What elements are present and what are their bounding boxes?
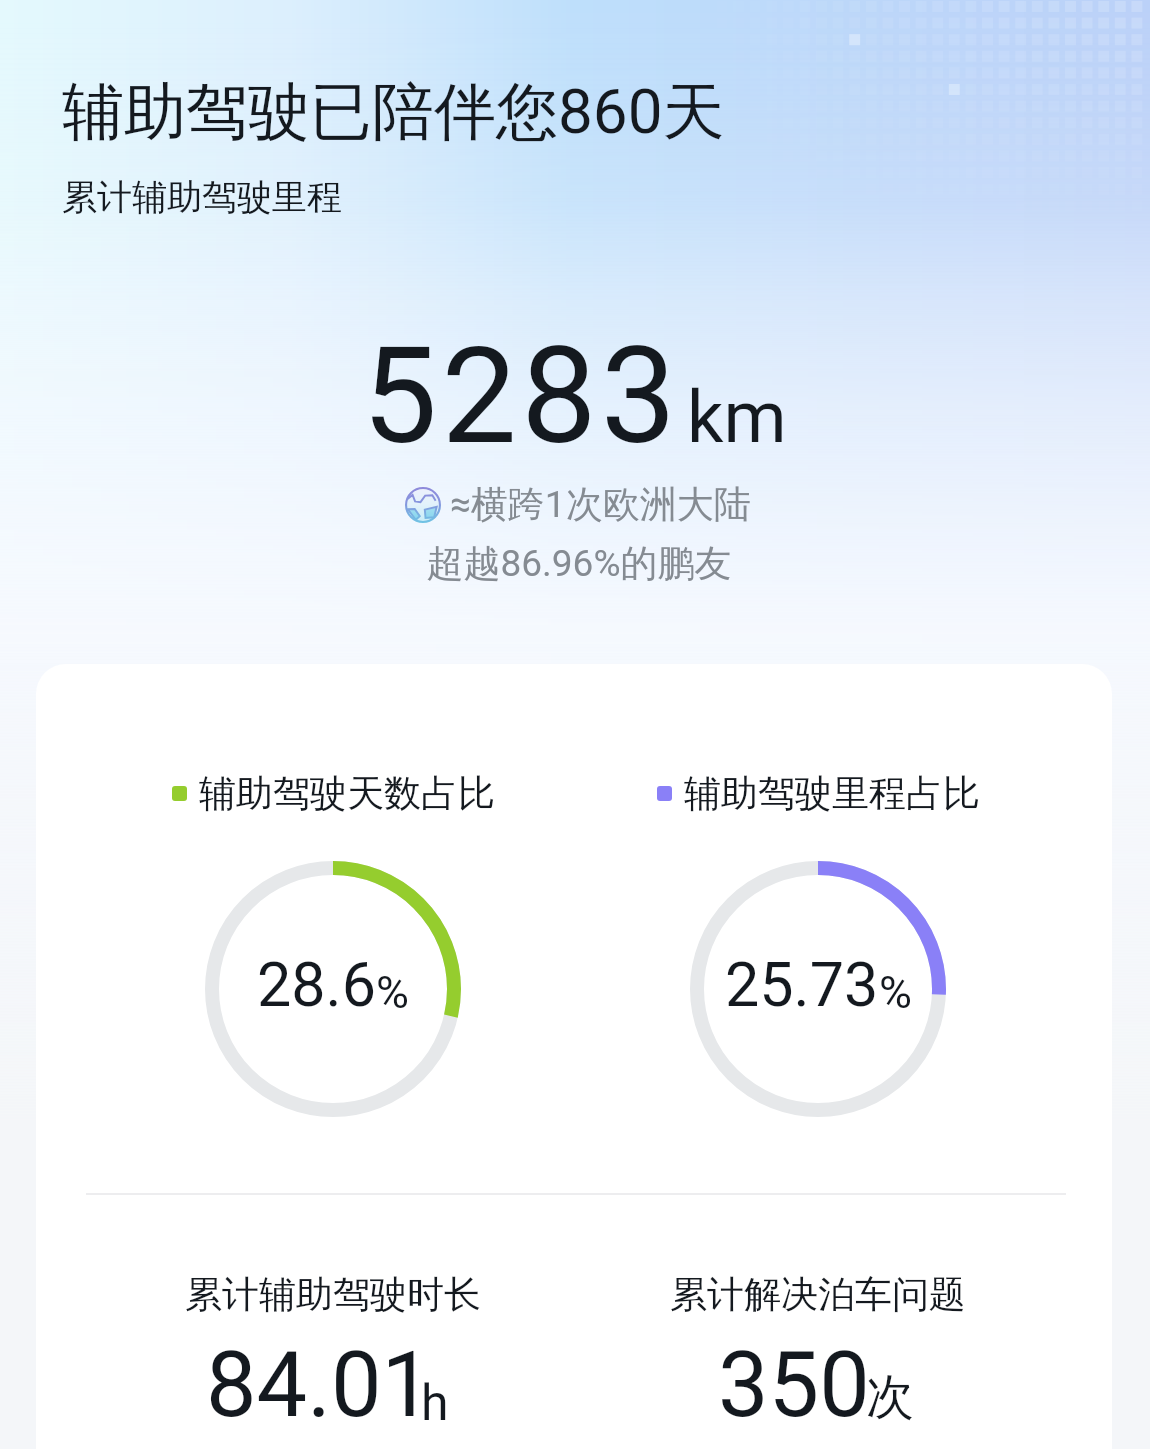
- staticText: 累计辅助驾驶时长: [185, 1271, 481, 1318]
- button[interactable]: 28.6: [205, 861, 461, 1117]
- staticText: 次: [866, 1367, 914, 1427]
- staticText: 5283: [362, 318, 681, 475]
- staticText: %: [879, 966, 912, 1019]
- staticText: km: [687, 375, 787, 459]
- staticText: 84.01: [206, 1333, 433, 1438]
- staticText: h: [421, 1374, 449, 1433]
- button[interactable]: 辅助驾驶天数占比: [172, 770, 495, 817]
- staticText: 辅助驾驶天数占比: [199, 770, 495, 817]
- staticText: ≈横跨1次欧洲大陆: [450, 481, 751, 528]
- staticText: 累计解决泊车问题: [670, 1271, 966, 1318]
- staticText: 超越86.96%的鹏友: [4, 540, 1150, 587]
- staticText: %: [376, 966, 409, 1019]
- staticText: 累计辅助驾驶里程: [62, 175, 342, 219]
- other: Globe: [405, 487, 441, 523]
- staticText: 28.6: [257, 949, 376, 1020]
- button[interactable]: 辅助驾驶里程占比: [657, 770, 980, 817]
- button[interactable]: 累计辅助驾驶时长: [185, 1271, 481, 1438]
- button[interactable]: 累计解决泊车问题: [670, 1271, 966, 1438]
- staticText: 辅助驾驶里程占比: [684, 770, 980, 817]
- staticText: 25.73: [725, 949, 879, 1020]
- button[interactable]: 25.73: [690, 861, 946, 1117]
- staticText: 辅助驾驶已陪伴您860天: [62, 73, 725, 151]
- staticText: 350: [718, 1333, 870, 1438]
